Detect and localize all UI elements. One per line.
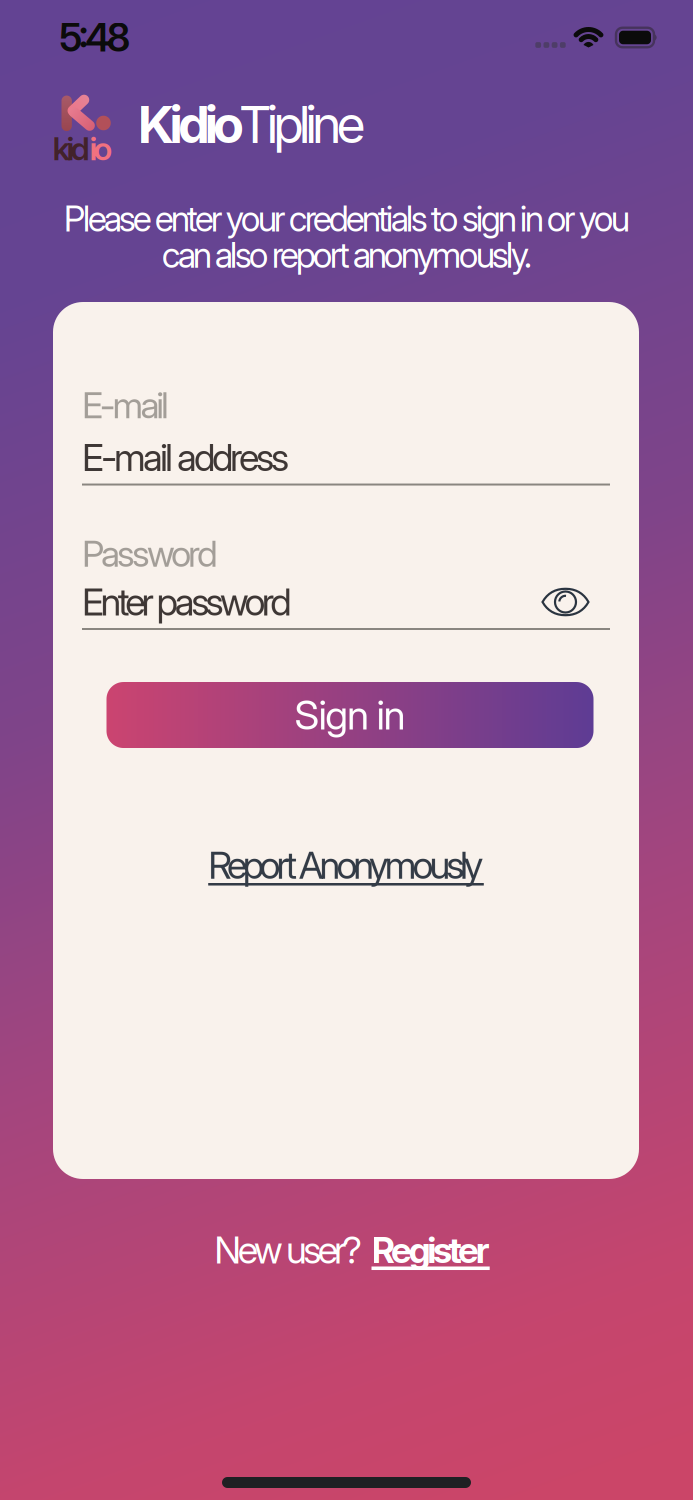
- staticText: E-mail address: [82, 435, 289, 479]
- staticText: Register: [371, 1229, 490, 1271]
- staticText: kid: [52, 130, 89, 167]
- button[interactable]: Show password: [541, 588, 590, 616]
- staticText: Password: [82, 532, 218, 575]
- staticText: 5:48: [59, 15, 131, 60]
- staticText: Please enter your credentials to sign in…: [63, 198, 629, 276]
- staticText: Sign in: [295, 691, 405, 739]
- button[interactable]: Report Anonymously: [208, 843, 484, 887]
- staticText: KidioTipline: [138, 95, 366, 154]
- button[interactable]: Register: [371, 1229, 490, 1271]
- staticText: New user?: [214, 1228, 361, 1272]
- staticText: Report Anonymously: [208, 843, 484, 887]
- staticText: io: [89, 130, 112, 167]
- staticText: E-mail: [82, 384, 169, 426]
- staticText: Enter password: [82, 580, 291, 624]
- button[interactable]: Sign in: [106, 682, 593, 748]
